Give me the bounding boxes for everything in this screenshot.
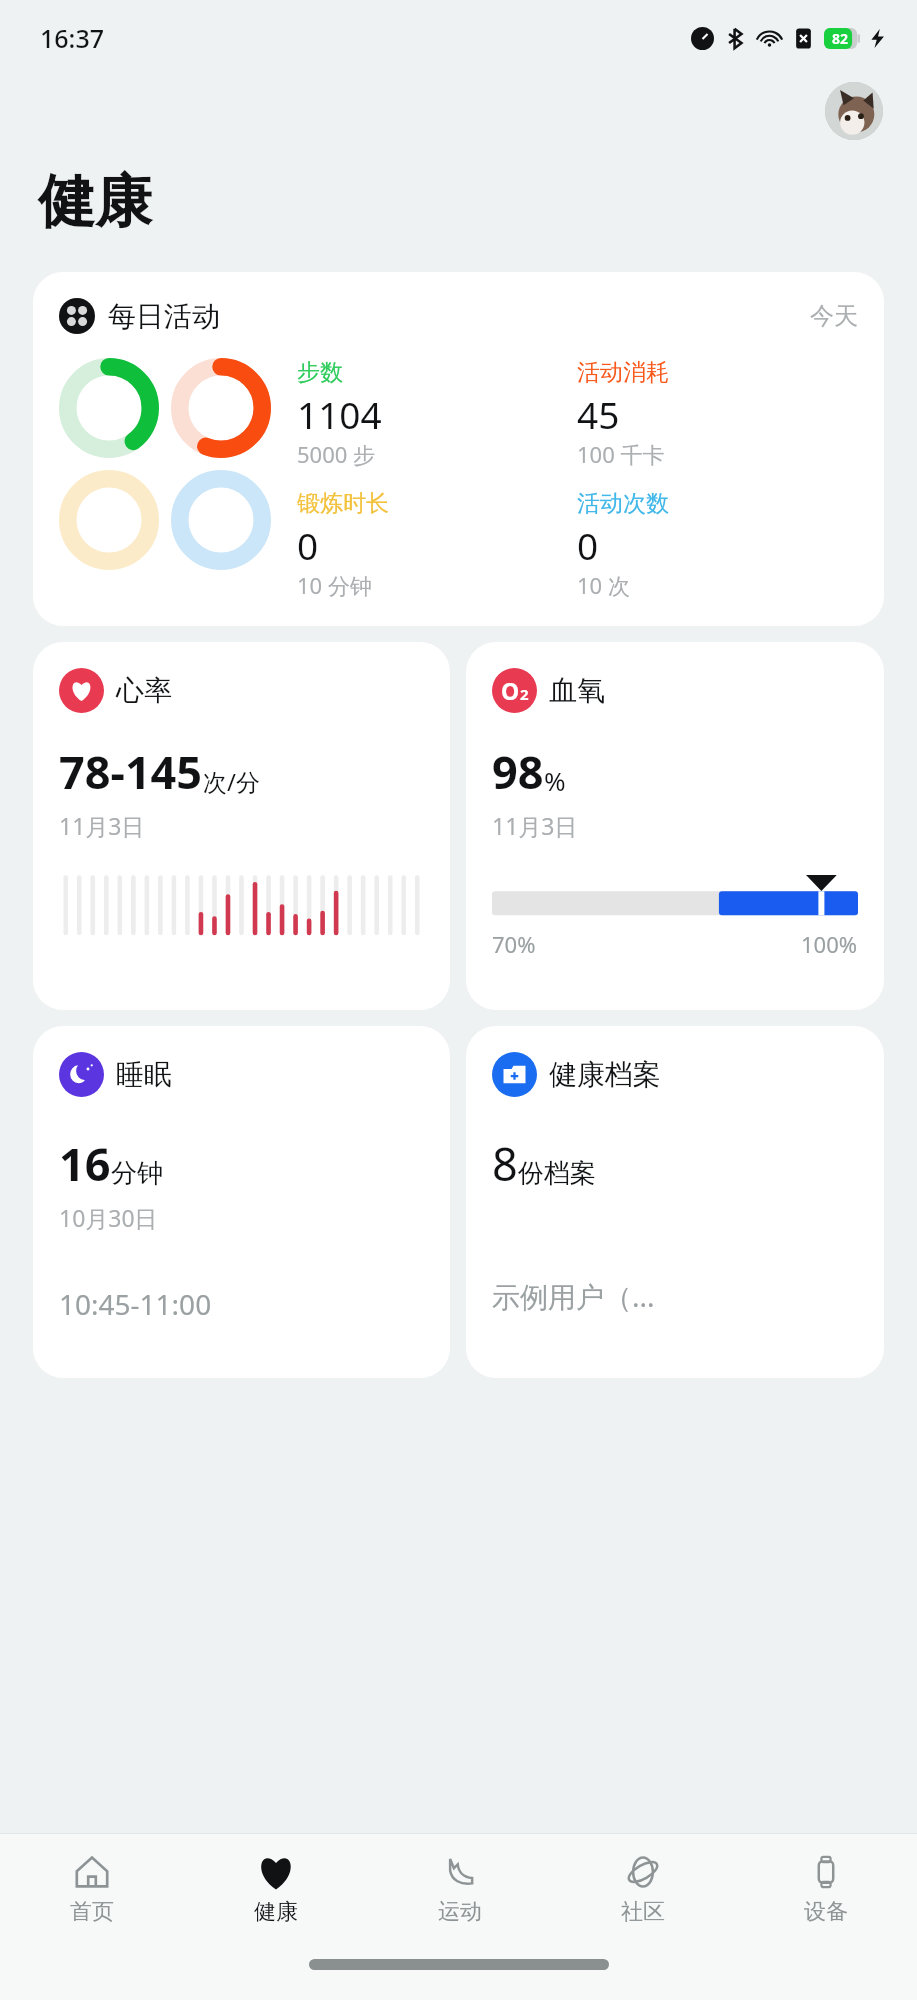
staticText: 血氧 bbox=[549, 673, 605, 708]
staticText: 10 次 bbox=[577, 570, 630, 600]
staticText: 运动 bbox=[438, 1898, 482, 1926]
button[interactable]: 首页 bbox=[0, 1849, 184, 1930]
staticText: 10月30日 bbox=[59, 1202, 158, 1233]
staticText: 份档案 bbox=[518, 1157, 596, 1190]
button[interactable]: 每日活动 bbox=[33, 272, 884, 626]
staticText: 98 bbox=[492, 741, 544, 802]
button[interactable]: O bbox=[466, 642, 884, 1010]
staticText: 5000 步 bbox=[297, 439, 376, 469]
button[interactable]: 设备 bbox=[734, 1849, 917, 1930]
button[interactable]: 健康档案 bbox=[466, 1026, 884, 1378]
button[interactable]: Profile bbox=[825, 82, 883, 140]
staticText: 首页 bbox=[70, 1898, 114, 1926]
staticText: 16:37 bbox=[40, 21, 105, 55]
staticText: 健康 bbox=[254, 1898, 298, 1926]
staticText: 100% bbox=[801, 929, 858, 959]
staticText: 70% bbox=[492, 929, 536, 959]
staticText: 活动消耗 bbox=[577, 358, 669, 387]
staticText: 45 bbox=[577, 389, 620, 439]
staticText: 78-145 bbox=[59, 741, 203, 802]
staticText: 分钟 bbox=[111, 1157, 163, 1190]
staticText: % bbox=[544, 763, 566, 798]
staticText: 11月3日 bbox=[492, 810, 578, 841]
staticText: 步数 bbox=[297, 358, 343, 387]
button[interactable]: 健康 bbox=[184, 1849, 368, 1930]
staticText: 健康 bbox=[38, 166, 152, 238]
staticText: 心率 bbox=[116, 673, 172, 708]
staticText: 设备 bbox=[804, 1898, 848, 1926]
staticText: 1104 bbox=[297, 389, 382, 439]
button[interactable]: 社区 bbox=[551, 1849, 734, 1930]
staticText: 10 分钟 bbox=[297, 570, 372, 600]
staticText: 今天 bbox=[810, 301, 858, 331]
button[interactable]: 心率 bbox=[33, 642, 450, 1010]
staticText: 100 千卡 bbox=[577, 439, 665, 469]
staticText: 16 bbox=[59, 1133, 111, 1194]
staticText: 0 bbox=[577, 520, 599, 570]
staticText: O bbox=[501, 675, 520, 706]
staticText: 示例用户（... bbox=[492, 1277, 655, 1315]
button[interactable]: 睡眠 bbox=[33, 1026, 450, 1378]
button[interactable]: 运动 bbox=[368, 1849, 551, 1930]
staticText: 0 bbox=[297, 520, 319, 570]
staticText: 2 bbox=[520, 684, 529, 704]
staticText: 睡眠 bbox=[116, 1057, 172, 1092]
staticText: 次/分 bbox=[203, 765, 260, 798]
staticText: 每日活动 bbox=[108, 299, 220, 334]
staticText: 8 bbox=[492, 1133, 518, 1194]
staticText: 10:45-11:00 bbox=[59, 1285, 212, 1323]
staticText: 健康档案 bbox=[549, 1057, 661, 1092]
staticText: 活动次数 bbox=[577, 489, 669, 518]
staticText: 82 bbox=[832, 29, 849, 48]
staticText: 锻炼时长 bbox=[297, 489, 389, 518]
staticText: 11月3日 bbox=[59, 810, 145, 841]
staticText: 社区 bbox=[621, 1898, 665, 1926]
